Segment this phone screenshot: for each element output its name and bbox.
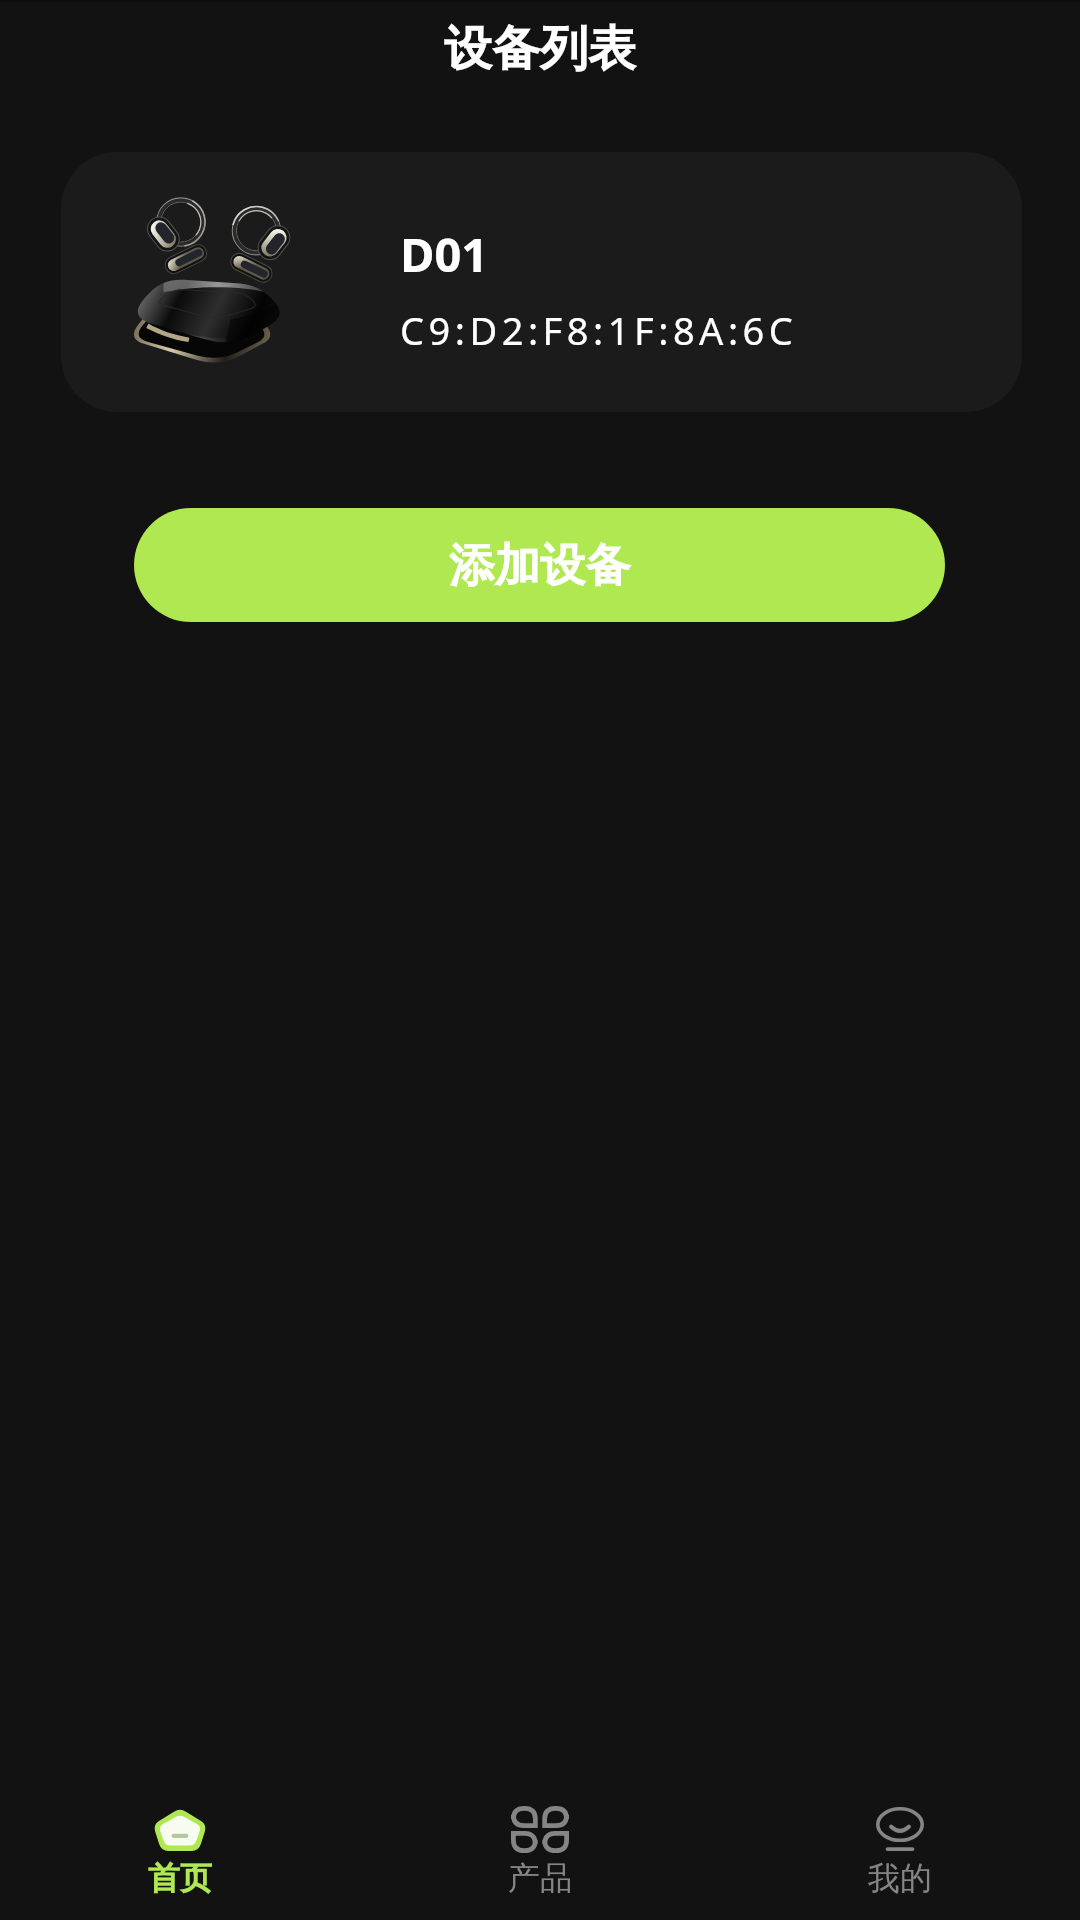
button[interactable]: 我的 <box>720 1800 1080 1898</box>
staticText: 我的 <box>868 1858 932 1898</box>
button[interactable]: 产品 <box>360 1800 720 1898</box>
staticText: 首页 <box>148 1858 212 1898</box>
staticText: D01 <box>400 222 489 286</box>
other: 我的 <box>876 1807 924 1852</box>
other: 首页 <box>153 1808 207 1851</box>
button[interactable]: 添加设备 <box>134 508 945 622</box>
staticText: 添加设备 <box>449 537 631 594</box>
staticText: 产品 <box>508 1858 572 1898</box>
staticText: C9:D2:F8:1F:8A:6C <box>400 304 798 356</box>
staticText: 设备列表 <box>444 19 636 79</box>
button[interactable]: 首页 <box>0 1800 360 1898</box>
button[interactable]: D01 <box>61 152 1022 412</box>
other: 产品 <box>511 1806 569 1853</box>
